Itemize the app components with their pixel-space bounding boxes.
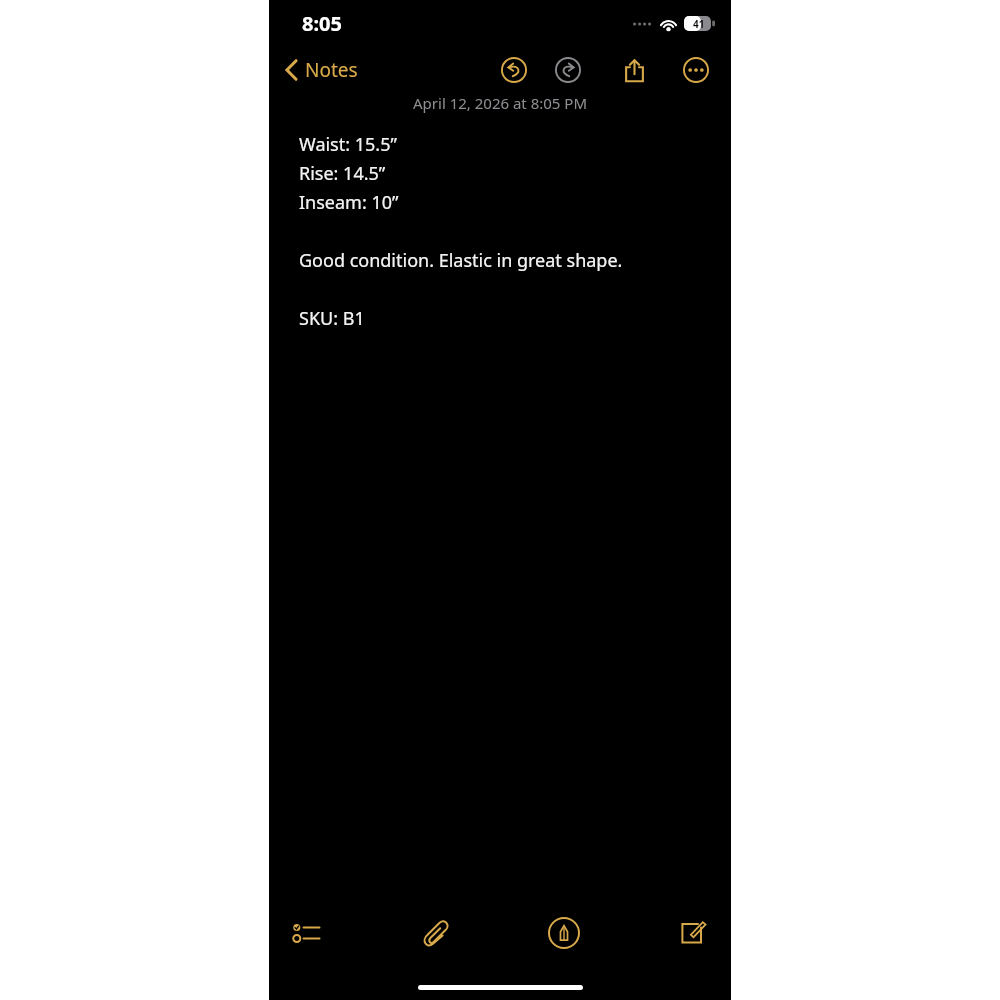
button[interactable]: Share bbox=[617, 53, 651, 87]
button[interactable]: Notes bbox=[281, 53, 362, 87]
button[interactable]: Attach file bbox=[413, 910, 459, 956]
button[interactable]: Undo bbox=[497, 53, 531, 87]
button[interactable]: More options bbox=[679, 53, 713, 87]
staticText: Waist: 15.5” bbox=[299, 132, 397, 157]
button[interactable]: New note bbox=[669, 910, 715, 956]
staticText: Rise: 14.5” bbox=[299, 161, 386, 186]
staticText: April 12, 2026 at 8:05 PM bbox=[413, 93, 588, 113]
button[interactable]: Redo bbox=[551, 53, 585, 87]
staticText: 8:05 bbox=[302, 10, 342, 37]
staticText: SKU: B1 bbox=[299, 306, 365, 331]
staticText: Inseam: 10” bbox=[299, 190, 399, 215]
staticText: 41 bbox=[693, 17, 705, 31]
button[interactable]: Checklist bbox=[285, 910, 331, 956]
staticText: Notes bbox=[305, 57, 358, 83]
staticText: Good condition. Elastic in great shape. bbox=[299, 248, 623, 273]
button[interactable]: Markup bbox=[541, 910, 587, 956]
